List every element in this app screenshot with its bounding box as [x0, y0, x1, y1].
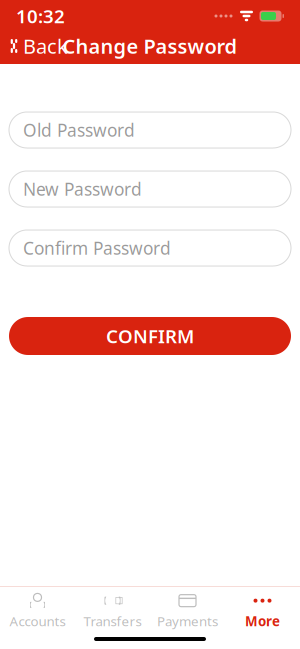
staticText: 10:32 [16, 4, 65, 28]
staticText: Accounts [9, 612, 65, 630]
button[interactable]: CONFIRM [9, 317, 291, 355]
staticText: Transfers [83, 612, 141, 630]
staticText: Back [23, 33, 68, 59]
button[interactable]: Confirm Password [9, 230, 291, 266]
button[interactable]: Back [0, 25, 78, 67]
button[interactable]: Payments [150, 586, 225, 630]
staticText: More [245, 612, 280, 630]
button[interactable]: More [225, 586, 300, 630]
button[interactable]: Accounts [0, 586, 75, 630]
staticText: Payments [157, 612, 218, 630]
staticText: CONFIRM [106, 324, 194, 348]
button[interactable]: Old Password [9, 112, 291, 148]
staticText: Old Password [23, 118, 135, 141]
staticText: New Password [23, 177, 142, 200]
button[interactable]: New Password [9, 171, 291, 207]
staticText: Confirm Password [23, 236, 171, 259]
button[interactable]: Transfers [75, 586, 150, 630]
staticText: Change Password [62, 33, 237, 59]
